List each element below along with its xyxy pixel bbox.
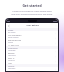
button[interactable]: Time zone bbox=[6, 54, 58, 59]
staticText: Preferences bbox=[8, 47, 18, 49]
staticText: USD bbox=[8, 62, 12, 64]
staticText: Security bbox=[8, 65, 15, 67]
button[interactable]: Phone bbox=[6, 41, 58, 46]
staticText: Create your profile in a few simple step… bbox=[11, 10, 53, 16]
staticText: Currency bbox=[8, 59, 15, 61]
staticText: Time zone bbox=[8, 54, 16, 56]
staticText: GMT -5 bbox=[8, 57, 15, 59]
staticText: Language bbox=[8, 49, 16, 51]
staticText: Phone bbox=[8, 41, 13, 43]
button[interactable]: Language bbox=[6, 49, 58, 54]
staticText: Full name bbox=[8, 31, 16, 33]
staticText: Password bbox=[8, 67, 16, 69]
staticText: Your details bbox=[26, 24, 39, 27]
staticText: +1 555 0142 bbox=[8, 44, 19, 46]
staticText: Ava Thompson bbox=[8, 34, 22, 36]
button[interactable]: Back bbox=[7, 24, 10, 27]
staticText: ava@mail.com bbox=[8, 39, 22, 41]
button[interactable]: Currency bbox=[6, 59, 58, 64]
staticText: Email address bbox=[8, 36, 19, 38]
button[interactable]: Email address bbox=[6, 36, 58, 41]
button[interactable]: Full name bbox=[6, 31, 58, 36]
staticText: Profile bbox=[8, 29, 14, 31]
button[interactable]: Password bbox=[6, 67, 58, 71]
staticText: Get started bbox=[22, 3, 42, 8]
staticText: English bbox=[8, 52, 15, 54]
